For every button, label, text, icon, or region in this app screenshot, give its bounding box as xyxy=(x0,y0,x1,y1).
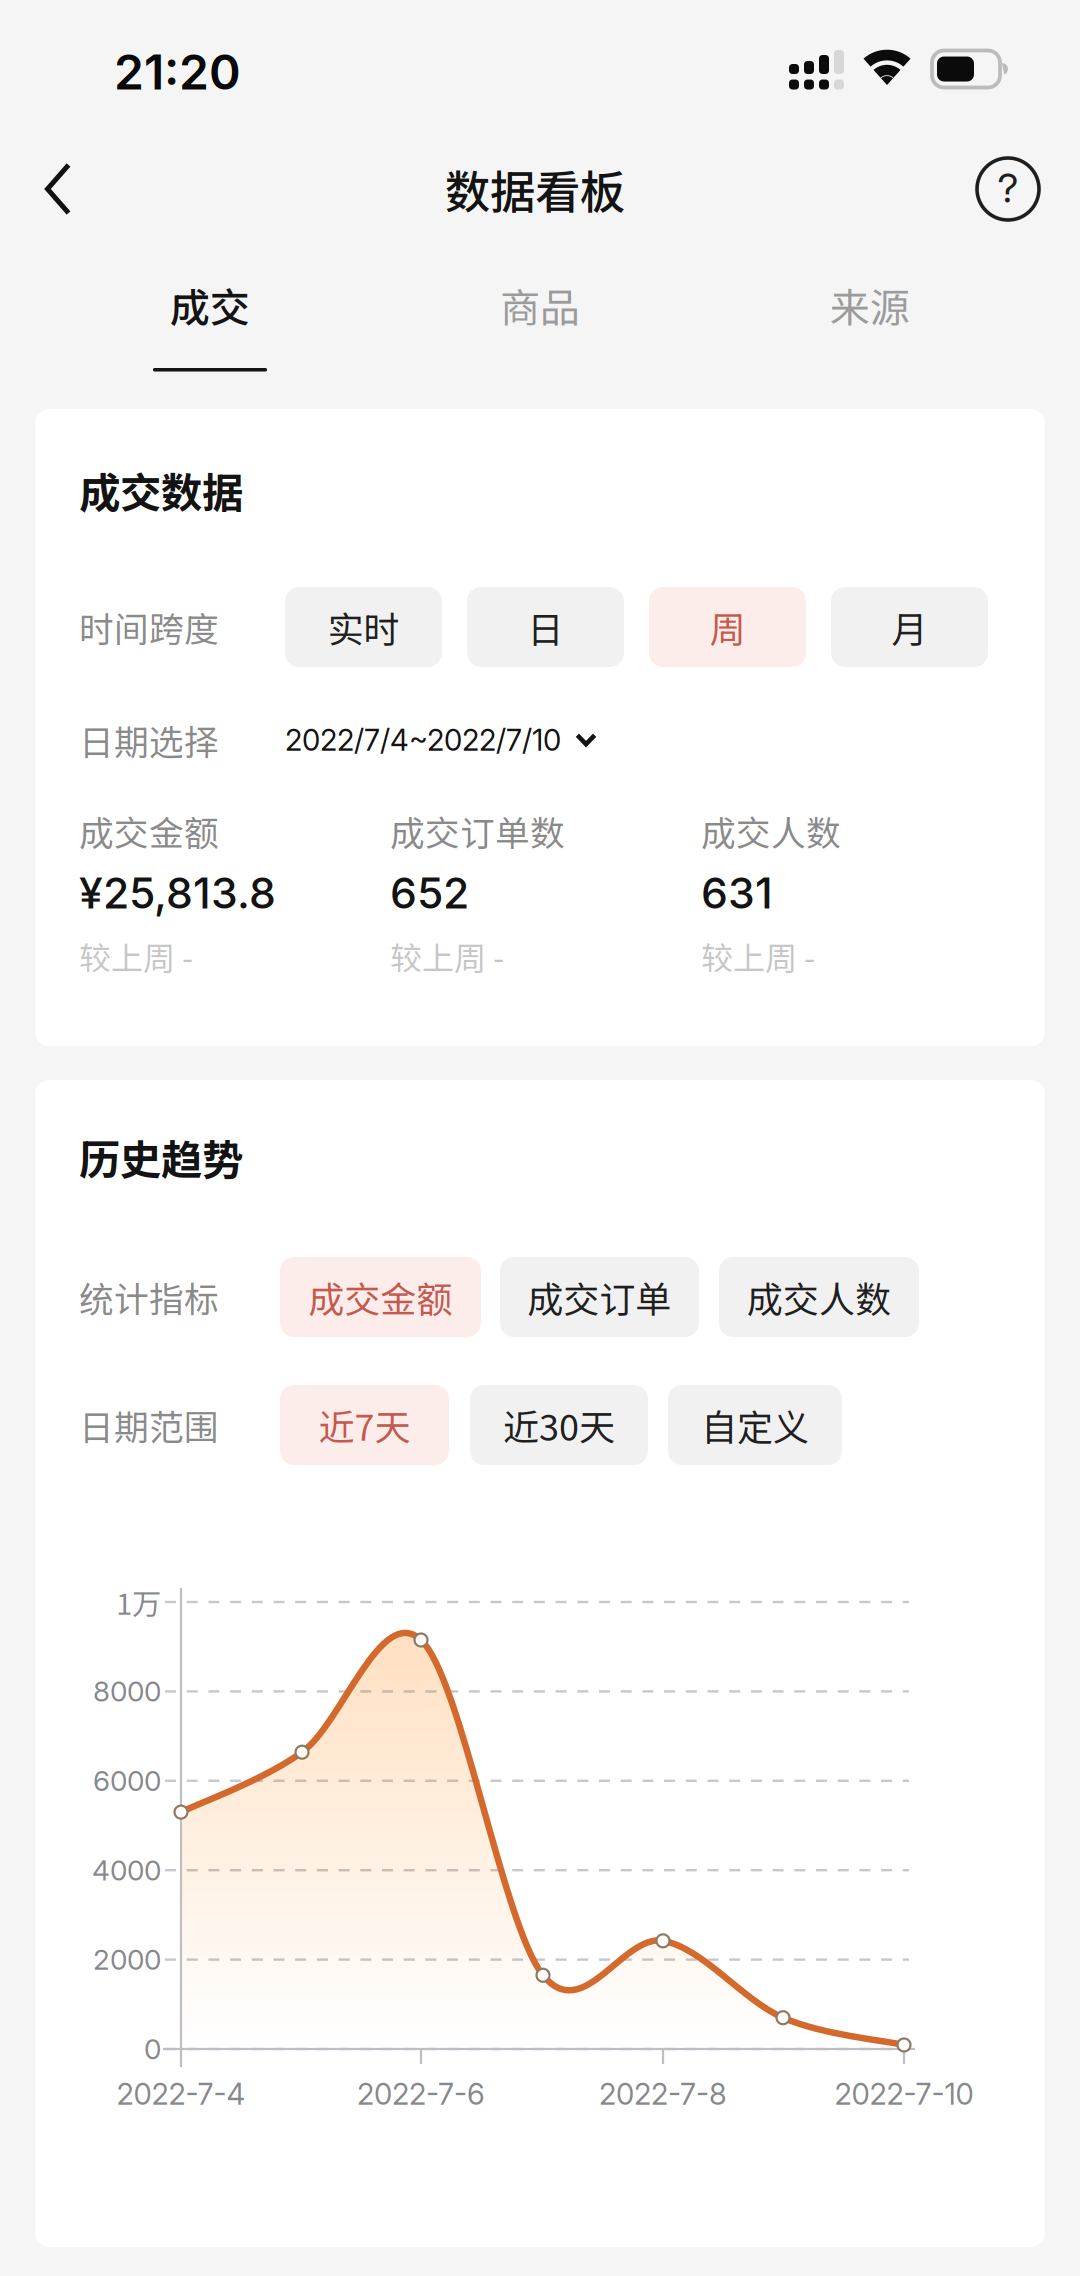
staticText: 6000 xyxy=(93,1764,161,1798)
staticText: 日期选择 xyxy=(79,715,219,765)
staticText: 商品 xyxy=(500,276,580,334)
button[interactable]: 商品 xyxy=(375,240,705,409)
button[interactable]: 周 xyxy=(649,587,806,667)
button[interactable]: 成交人数 xyxy=(719,1257,919,1337)
staticText: 近30天 xyxy=(503,1399,615,1451)
staticText: ? xyxy=(997,164,1018,212)
staticText: 1万 xyxy=(116,1581,161,1623)
staticText: 实时 xyxy=(327,601,399,653)
staticText: 来源 xyxy=(830,276,910,334)
staticText: 自定义 xyxy=(701,1399,809,1451)
staticText: 成交金额 xyxy=(308,1271,452,1323)
button[interactable]: 成交金额 xyxy=(280,1257,481,1337)
staticText: 日 xyxy=(527,601,563,653)
button[interactable]: 实时 xyxy=(285,587,442,667)
staticText: 较上周 - xyxy=(79,933,193,979)
button[interactable]: 近30天 xyxy=(470,1385,648,1465)
button[interactable]: 帮助 xyxy=(952,138,1064,240)
staticText: 成交订单数 xyxy=(390,806,565,856)
button[interactable]: 来源 xyxy=(705,240,1035,409)
staticText: 2022/7/4~2022/7/10 xyxy=(285,722,561,758)
staticText: 2022-7-6 xyxy=(357,2076,485,2112)
button[interactable]: 2022/7/4~2022/7/10 xyxy=(285,712,597,768)
staticText: 较上周 - xyxy=(701,933,815,979)
button[interactable]: 成交 xyxy=(45,240,375,409)
staticText: 21:20 xyxy=(114,43,241,101)
staticText: 成交 xyxy=(170,276,250,334)
button[interactable]: 日 xyxy=(467,587,624,667)
button[interactable]: 近7天 xyxy=(280,1385,449,1465)
staticText: 成交金额 xyxy=(79,806,219,856)
staticText: 8000 xyxy=(93,1674,161,1708)
staticText: 较上周 - xyxy=(390,933,504,979)
staticText: 数据看板 xyxy=(445,156,625,222)
staticText: 2000 xyxy=(93,1943,161,1977)
button[interactable]: 成交订单 xyxy=(500,1257,699,1337)
button[interactable]: 月 xyxy=(831,587,988,667)
staticText: 0 xyxy=(144,2032,161,2066)
button[interactable]: 返回 xyxy=(2,138,114,240)
staticText: 631 xyxy=(701,867,773,919)
staticText: 成交订单 xyxy=(527,1271,671,1323)
staticText: ¥25,813.8 xyxy=(79,867,276,919)
staticText: 统计指标 xyxy=(79,1272,219,1322)
staticText: 周 xyxy=(709,601,745,653)
staticText: 月 xyxy=(891,601,927,653)
staticText: 652 xyxy=(390,867,469,919)
staticText: 4000 xyxy=(92,1853,161,1887)
button[interactable]: 自定义 xyxy=(668,1385,842,1465)
staticText: 近7天 xyxy=(318,1399,410,1451)
staticText: 2022-7-8 xyxy=(599,2076,727,2112)
staticText: 2022-7-10 xyxy=(834,2076,973,2112)
staticText: 历史趋势 xyxy=(79,1127,243,1187)
staticText: 日期范围 xyxy=(79,1400,219,1450)
staticText: 2022-7-4 xyxy=(116,2076,245,2112)
staticText: 成交数据 xyxy=(79,460,243,520)
staticText: 成交人数 xyxy=(747,1271,891,1323)
staticText: 成交人数 xyxy=(701,806,841,856)
staticText: 时间跨度 xyxy=(79,602,219,652)
